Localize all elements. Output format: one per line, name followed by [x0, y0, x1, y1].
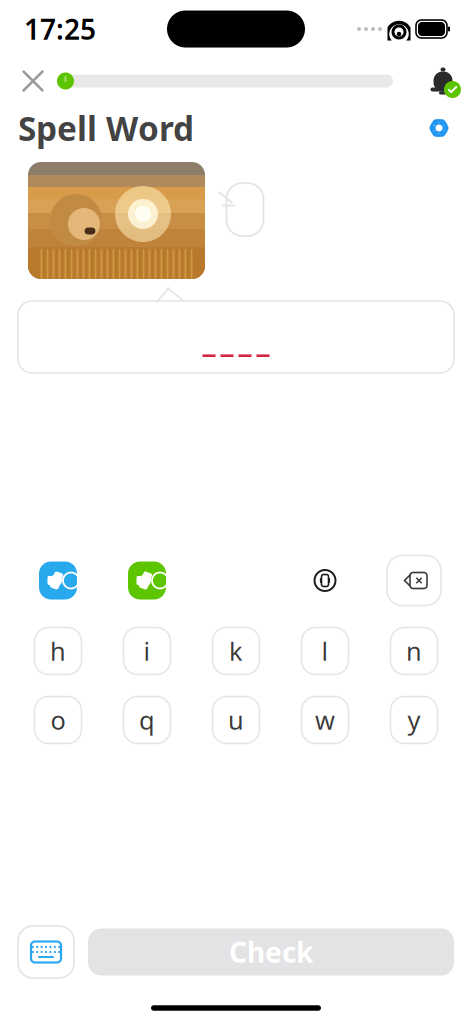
button[interactable]: Close	[11, 59, 55, 103]
button[interactable]: i	[123, 627, 170, 674]
button[interactable]: u	[212, 696, 259, 743]
staticText: Check	[229, 933, 313, 971]
button[interactable]: h	[34, 627, 81, 674]
button[interactable]: Delete	[369, 555, 458, 605]
button[interactable]: q	[123, 696, 170, 743]
button[interactable]: Play word slowly	[13, 555, 102, 605]
staticText: o	[50, 703, 65, 737]
staticText: 17:25	[24, 10, 96, 48]
staticText: u	[228, 703, 244, 737]
staticText: k	[229, 634, 243, 668]
button[interactable]: l	[301, 627, 348, 674]
staticText: Spell Word	[18, 106, 194, 150]
staticText: n	[406, 634, 422, 668]
staticText: y	[407, 703, 420, 737]
button[interactable]: Vibration hint	[280, 555, 369, 605]
staticText: h	[50, 634, 66, 668]
button[interactable]: Notifications	[422, 60, 464, 102]
button[interactable]: o	[34, 696, 81, 743]
button[interactable]: k	[212, 627, 259, 674]
button[interactable]: Check	[88, 928, 454, 975]
button[interactable]: w	[301, 696, 348, 743]
staticText: i	[143, 634, 150, 668]
button[interactable]: Show keyboard	[18, 926, 74, 978]
button[interactable]: Play word	[102, 555, 191, 605]
button[interactable]: y	[390, 696, 437, 743]
button[interactable]: Settings	[420, 109, 458, 147]
staticText: q	[139, 703, 155, 737]
staticText: w	[315, 703, 335, 737]
button[interactable]: n	[390, 627, 437, 674]
staticText: l	[321, 634, 328, 668]
